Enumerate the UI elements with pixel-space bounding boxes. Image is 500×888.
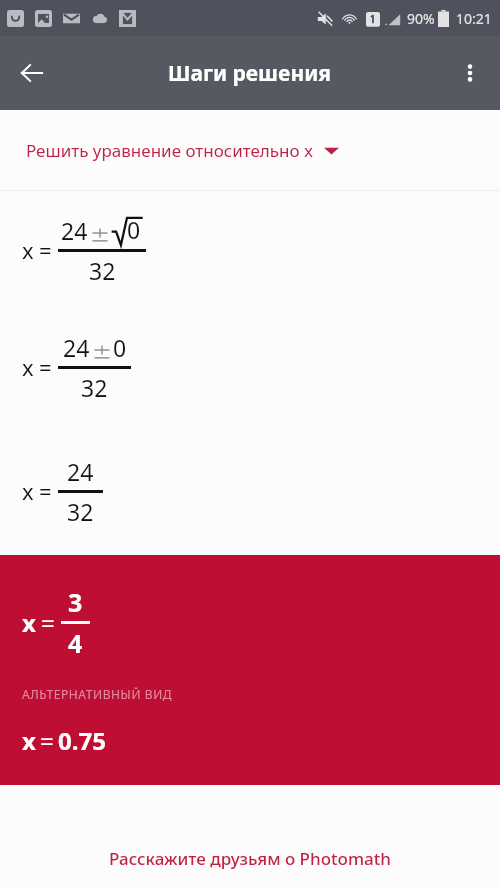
- staticText: 24: [63, 332, 90, 363]
- staticText: 32: [89, 255, 116, 286]
- staticText: 10:21: [456, 9, 492, 28]
- staticText: Решить уравнение относительно x: [26, 139, 314, 162]
- staticText: =: [39, 476, 52, 506]
- staticText: 32: [67, 496, 94, 527]
- staticText: x: [22, 606, 36, 639]
- staticText: x: [22, 476, 34, 506]
- staticText: 0: [127, 214, 141, 245]
- staticText: 32: [81, 372, 108, 403]
- staticText: 90%: [407, 9, 435, 28]
- button[interactable]: Назад: [8, 49, 56, 97]
- staticText: 0.75: [58, 724, 106, 757]
- staticText: АЛЬТЕРНАТИВНЫЙ ВИД: [22, 686, 173, 702]
- button[interactable]: Решить уравнение относительно x: [0, 110, 500, 190]
- staticText: x: [22, 724, 36, 757]
- staticText: 4: [68, 626, 83, 660]
- staticText: =: [39, 352, 52, 382]
- staticText: =: [40, 724, 54, 757]
- staticText: 24: [67, 456, 94, 487]
- staticText: 3: [68, 585, 83, 619]
- staticText: 0: [113, 332, 127, 363]
- staticText: Шаги решения: [168, 59, 332, 88]
- button[interactable]: Меню: [446, 49, 494, 97]
- staticText: Расскажите друзьям о Photomath: [109, 847, 391, 870]
- staticText: x: [22, 235, 34, 265]
- staticText: x: [22, 352, 34, 382]
- staticText: =: [41, 606, 55, 639]
- staticText: =: [39, 235, 52, 265]
- button[interactable]: Расскажите друзьям о Photomath: [0, 785, 500, 888]
- staticText: 24: [61, 215, 88, 246]
